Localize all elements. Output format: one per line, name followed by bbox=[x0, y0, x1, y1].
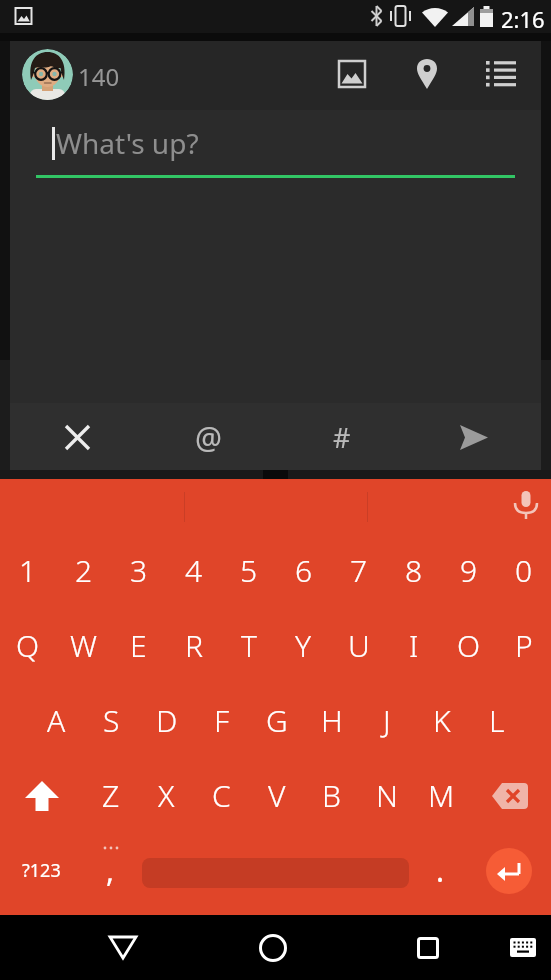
button[interactable] bbox=[10, 110, 541, 403]
staticText: A bbox=[47, 700, 66, 741]
staticText: 1 bbox=[19, 550, 37, 591]
button[interactable]: 4 bbox=[166, 533, 221, 608]
button[interactable]: U bbox=[331, 608, 386, 683]
staticText: X bbox=[158, 775, 175, 816]
staticText: 7 bbox=[350, 550, 368, 591]
staticText: Z bbox=[102, 775, 120, 816]
button[interactable]: 9 bbox=[441, 533, 496, 608]
button[interactable]: # bbox=[312, 407, 372, 467]
staticText: T bbox=[241, 625, 257, 666]
button[interactable]: Z bbox=[83, 758, 139, 833]
button[interactable]: W bbox=[56, 608, 111, 683]
button[interactable]: O bbox=[441, 608, 496, 683]
button[interactable]: E bbox=[111, 608, 166, 683]
button[interactable]: T bbox=[221, 608, 276, 683]
button[interactable] bbox=[22, 49, 73, 100]
staticText: 3 bbox=[130, 550, 148, 591]
button[interactable]: 2 bbox=[56, 533, 111, 608]
staticText: F bbox=[214, 700, 230, 741]
staticText: . bbox=[436, 850, 445, 891]
button[interactable]: , bbox=[83, 833, 138, 908]
button[interactable]: M bbox=[414, 758, 469, 833]
button[interactable]: 3 bbox=[111, 533, 166, 608]
button[interactable] bbox=[10, 41, 541, 110]
button[interactable] bbox=[47, 407, 107, 467]
staticText: W bbox=[70, 625, 97, 666]
button[interactable]: 0 bbox=[496, 533, 551, 608]
button[interactable]: S bbox=[84, 683, 139, 758]
button[interactable] bbox=[486, 848, 532, 894]
staticText: K bbox=[433, 700, 451, 741]
staticText: L bbox=[489, 700, 505, 741]
button[interactable]: 6 bbox=[276, 533, 331, 608]
button[interactable] bbox=[243, 920, 303, 975]
staticText: 140 bbox=[78, 60, 120, 88]
staticText: 2 bbox=[75, 550, 93, 591]
staticText: 6 bbox=[295, 550, 313, 591]
staticText: J bbox=[383, 700, 391, 741]
button[interactable]: A bbox=[28, 683, 84, 758]
button[interactable] bbox=[473, 46, 529, 102]
staticText: 8 bbox=[405, 550, 423, 591]
staticText: ?123 bbox=[22, 858, 61, 883]
staticText: 4 bbox=[185, 550, 203, 591]
staticText: G bbox=[266, 700, 288, 741]
staticText: P bbox=[515, 625, 533, 666]
button[interactable]: G bbox=[249, 683, 304, 758]
staticText: C bbox=[212, 775, 231, 816]
staticText: Y bbox=[295, 625, 312, 666]
staticText: V bbox=[268, 775, 286, 816]
button[interactable] bbox=[444, 407, 504, 467]
staticText: O bbox=[457, 625, 481, 666]
button[interactable]: @ bbox=[178, 407, 238, 467]
button[interactable]: B bbox=[304, 758, 359, 833]
button[interactable]: L bbox=[469, 683, 524, 758]
button[interactable]: Q bbox=[0, 608, 56, 683]
staticText: @ bbox=[195, 417, 222, 458]
staticText: What's up? bbox=[56, 124, 199, 162]
button[interactable]: H bbox=[304, 683, 359, 758]
staticText: H bbox=[321, 700, 343, 741]
button[interactable]: 7 bbox=[331, 533, 386, 608]
button[interactable]: J bbox=[359, 683, 414, 758]
button[interactable] bbox=[398, 920, 458, 975]
button[interactable]: F bbox=[194, 683, 249, 758]
button[interactable] bbox=[500, 925, 546, 970]
staticText: N bbox=[376, 775, 398, 816]
button[interactable]: R bbox=[166, 608, 221, 683]
staticText: D bbox=[156, 700, 178, 741]
button[interactable]: P bbox=[496, 608, 551, 683]
button[interactable] bbox=[324, 46, 380, 102]
staticText: 5 bbox=[240, 550, 258, 591]
button[interactable]: 1 bbox=[0, 533, 56, 608]
button[interactable] bbox=[468, 758, 551, 833]
button[interactable]: . bbox=[413, 833, 468, 908]
button[interactable]: Y bbox=[276, 608, 331, 683]
button[interactable] bbox=[501, 481, 551, 531]
staticText: R bbox=[185, 625, 203, 666]
button[interactable]: N bbox=[359, 758, 414, 833]
button[interactable] bbox=[93, 920, 153, 975]
staticText: # bbox=[333, 419, 351, 456]
button[interactable]: K bbox=[414, 683, 469, 758]
staticText: , bbox=[106, 850, 115, 891]
button[interactable]: X bbox=[139, 758, 194, 833]
staticText: 0 bbox=[515, 550, 533, 591]
staticText: I bbox=[409, 625, 419, 666]
staticText: S bbox=[103, 700, 120, 741]
button[interactable]: V bbox=[249, 758, 304, 833]
button[interactable]: ?123 bbox=[0, 833, 83, 908]
button[interactable] bbox=[399, 46, 455, 102]
button[interactable] bbox=[0, 758, 83, 833]
button[interactable]: I bbox=[386, 608, 441, 683]
staticText: M bbox=[428, 775, 455, 816]
button[interactable]: 5 bbox=[221, 533, 276, 608]
button[interactable]: C bbox=[194, 758, 249, 833]
button[interactable]: D bbox=[139, 683, 194, 758]
staticText: U bbox=[348, 625, 370, 666]
staticText: 9 bbox=[460, 550, 478, 591]
staticText: Q bbox=[16, 625, 40, 666]
button[interactable]: 8 bbox=[386, 533, 441, 608]
staticText: E bbox=[130, 625, 147, 666]
